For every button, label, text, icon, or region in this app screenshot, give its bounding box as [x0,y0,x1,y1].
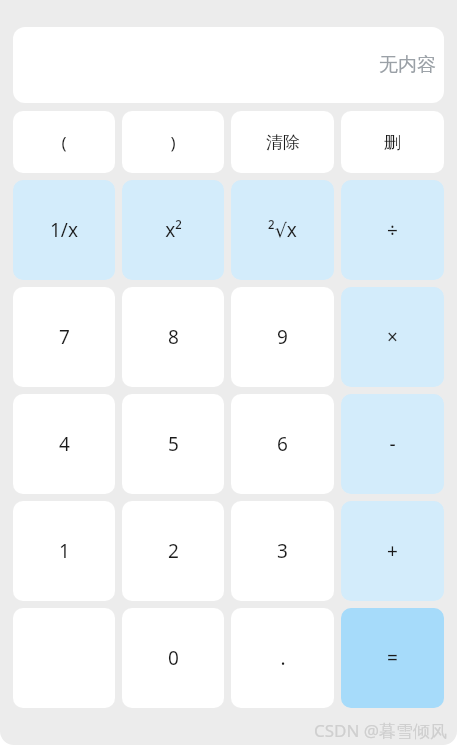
staticText: 1 [59,538,70,564]
button[interactable]: ÷ [341,180,444,280]
button[interactable]: ) [122,111,224,173]
staticText: 6 [277,431,288,457]
button[interactable]: 3 [231,501,334,601]
button[interactable]: 删 [341,111,444,173]
staticText: 1/x [50,217,78,243]
button[interactable]: 清除 [231,111,334,173]
staticText: 4 [59,431,70,457]
staticText: x² [165,217,182,243]
button[interactable]: 5 [122,394,224,494]
button[interactable]: x² [122,180,224,280]
button[interactable]: 9 [231,287,334,387]
staticText: 2 [168,538,179,564]
staticText: . [280,645,286,671]
staticText: ²√x [268,217,297,243]
staticText: 7 [59,324,70,350]
staticText: ÷ [387,217,398,243]
button[interactable]: 1/x [13,180,115,280]
button[interactable]: . [231,608,334,708]
button[interactable]: 6 [231,394,334,494]
button[interactable]: × [341,287,444,387]
staticText: 3 [277,538,288,564]
button[interactable]: 8 [122,287,224,387]
button[interactable]: 0 [122,608,224,708]
button[interactable]: = [341,608,444,708]
staticText: 无内容 [379,53,436,77]
button[interactable]: + [341,501,444,601]
staticText: 8 [168,324,179,350]
staticText: 9 [277,324,288,350]
staticText: 0 [168,645,179,671]
staticText: ) [170,131,176,154]
staticText: 删 [384,132,401,153]
staticText: 清除 [266,132,300,153]
staticText: 5 [168,431,179,457]
staticText: + [387,538,398,564]
button[interactable]: 无内容 [13,27,444,103]
staticText: CSDN @暮雪倾风 [314,719,448,742]
button[interactable]: ²√x [231,180,334,280]
button[interactable]: 1 [13,501,115,601]
staticText: = [387,645,398,671]
button[interactable]: ( [13,111,115,173]
staticText: ( [61,131,67,154]
button[interactable]: 2 [122,501,224,601]
button[interactable]: - [341,394,444,494]
staticText: × [387,324,398,350]
staticText: - [389,431,396,457]
button[interactable]: 4 [13,394,115,494]
button[interactable]: 7 [13,287,115,387]
